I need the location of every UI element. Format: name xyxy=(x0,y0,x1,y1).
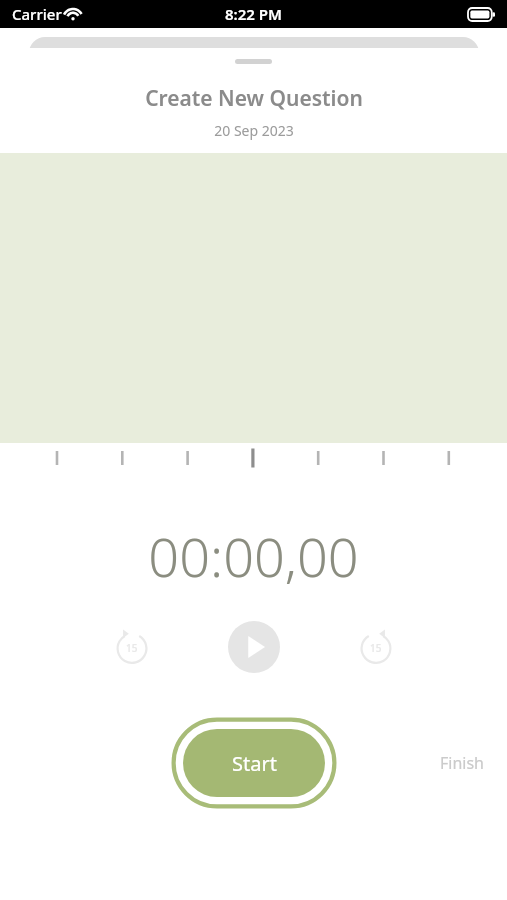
button[interactable]: Forward 15 seconds xyxy=(358,629,394,665)
staticText: 8:22 PM xyxy=(225,4,282,24)
staticText: Finish xyxy=(440,752,485,774)
staticText: Start xyxy=(232,750,277,777)
staticText: 00:00,00 xyxy=(148,519,359,593)
staticText: 15 xyxy=(126,641,138,655)
button[interactable]: Start xyxy=(171,717,337,809)
staticText: Create New Question xyxy=(145,84,363,113)
staticText: 15 xyxy=(370,641,382,655)
button[interactable]: Finish xyxy=(440,752,485,774)
button[interactable]: Play xyxy=(228,621,280,673)
staticText: Carrier xyxy=(12,4,62,24)
staticText: 20 Sep 2023 xyxy=(214,121,294,140)
button[interactable]: Back 15 seconds xyxy=(114,629,150,665)
